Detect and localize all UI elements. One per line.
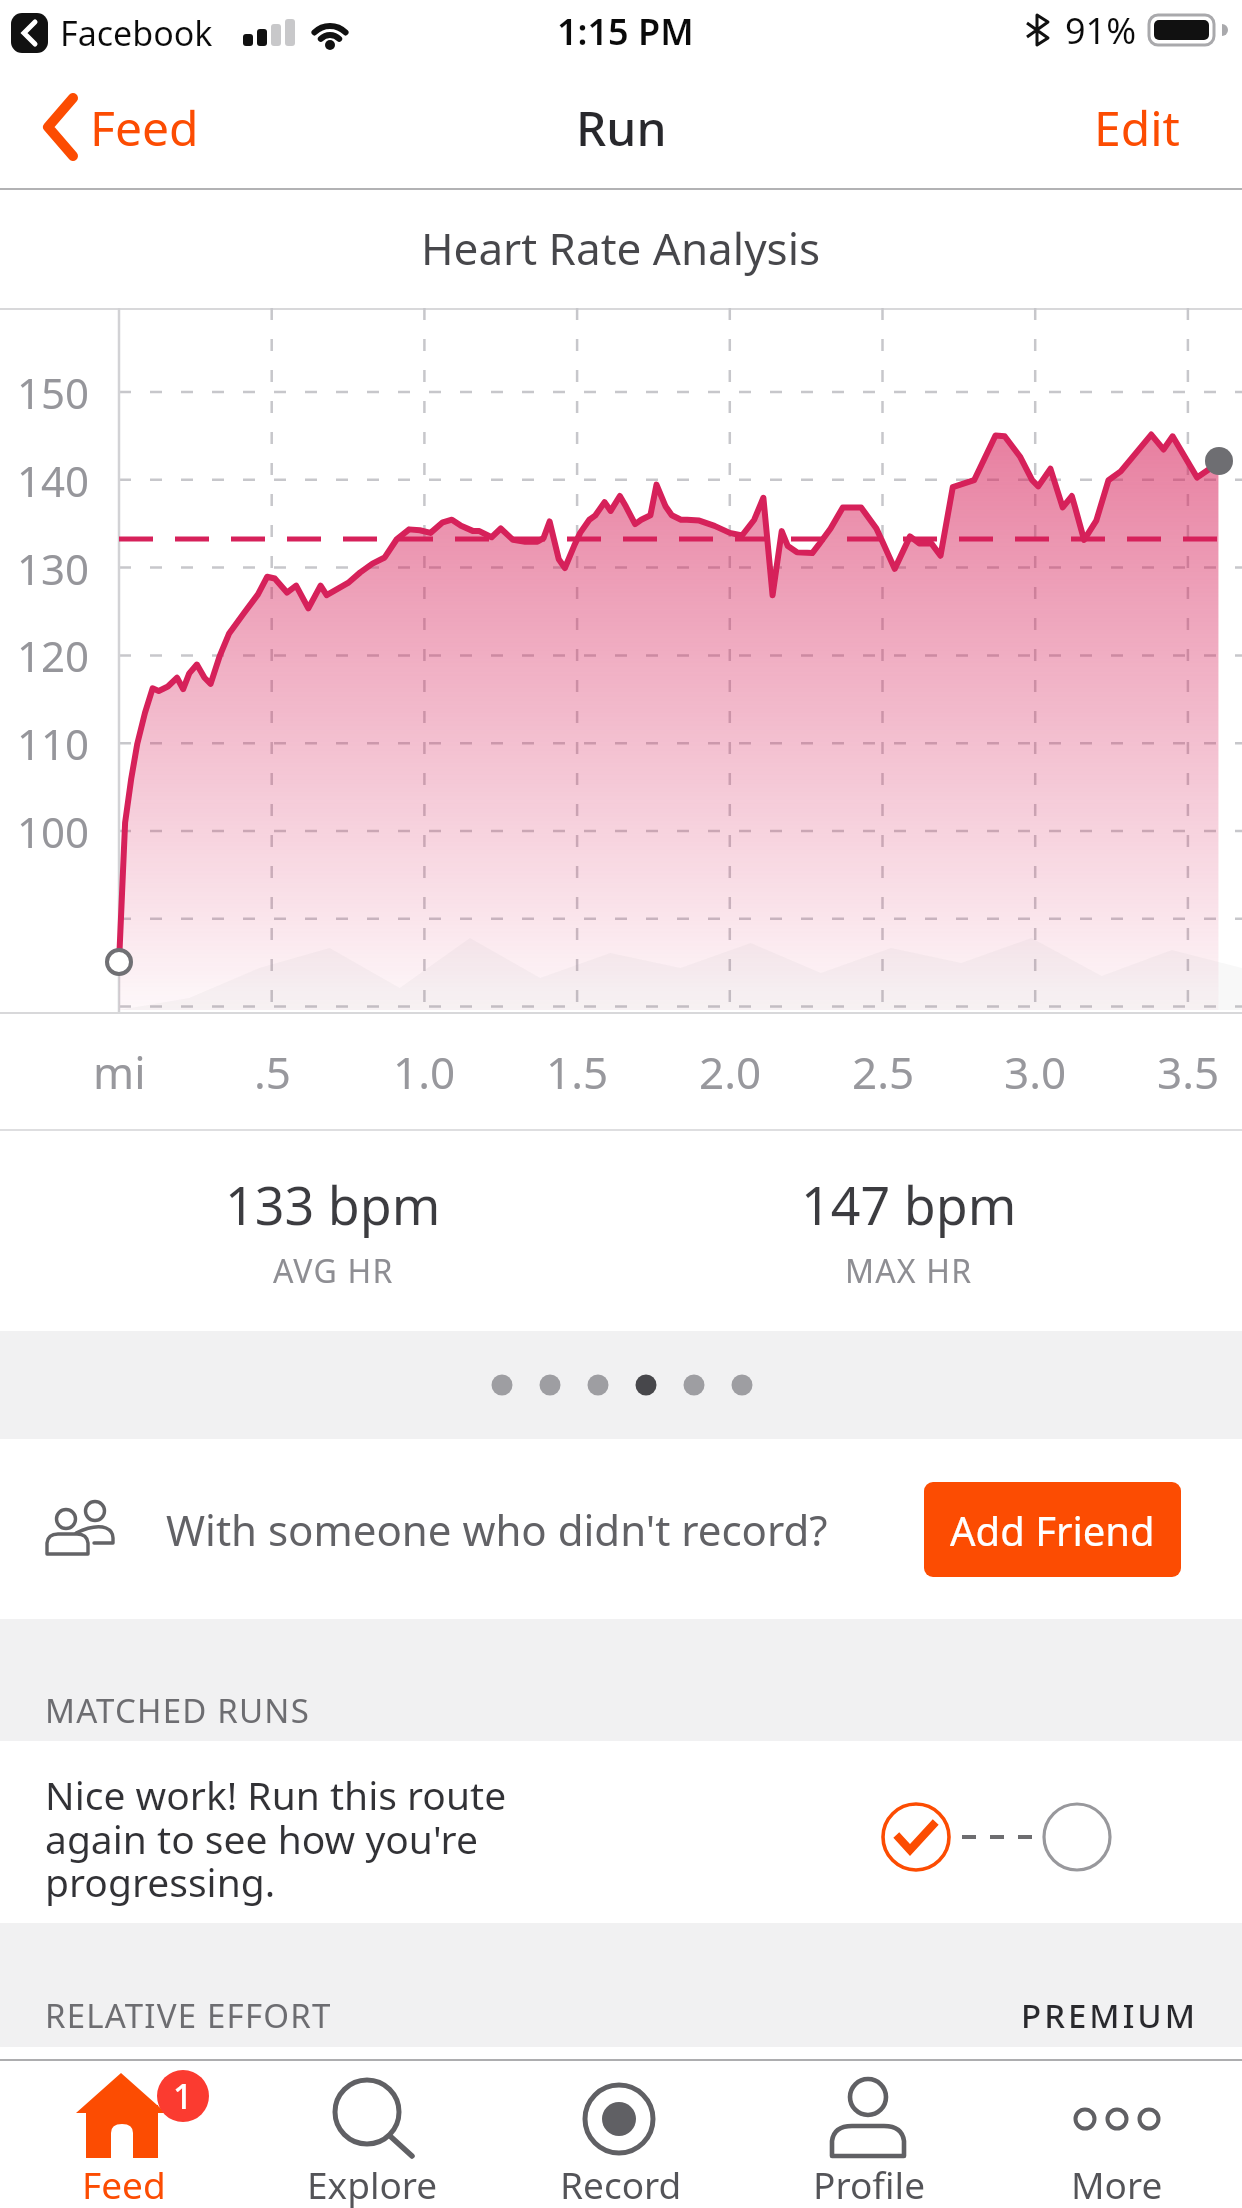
button[interactable] bbox=[1040, 76, 1242, 180]
staticText: progressing. bbox=[45, 1855, 276, 1908]
staticText: Edit bbox=[1094, 95, 1180, 160]
staticText: Feed bbox=[90, 95, 199, 160]
button[interactable] bbox=[994, 2061, 1242, 2208]
button[interactable] bbox=[0, 66, 260, 188]
button[interactable] bbox=[745, 2061, 993, 2208]
staticText: 120 bbox=[17, 627, 90, 684]
button[interactable]: Add Friend bbox=[924, 1482, 1181, 1577]
button[interactable] bbox=[497, 2061, 745, 2208]
staticText: 100 bbox=[17, 803, 90, 860]
staticText: 150 bbox=[17, 364, 90, 421]
staticText: Add Friend bbox=[950, 1503, 1155, 1557]
staticText: .5 bbox=[254, 1042, 291, 1102]
button[interactable] bbox=[248, 2061, 496, 2208]
staticText: More bbox=[1071, 2159, 1163, 2208]
staticText: MATCHED RUNS bbox=[45, 1688, 310, 1733]
staticText: Record bbox=[560, 2159, 682, 2208]
staticText: Explore bbox=[307, 2159, 438, 2208]
button[interactable] bbox=[0, 2061, 248, 2208]
staticText: again to see how you're bbox=[45, 1812, 478, 1865]
staticText: 2.0 bbox=[699, 1042, 762, 1102]
staticText: 140 bbox=[17, 452, 90, 509]
staticText: Feed bbox=[82, 2159, 166, 2208]
staticText: MAX HR bbox=[845, 1249, 973, 1293]
staticText: AVG HR bbox=[273, 1249, 394, 1293]
staticText: 3.5 bbox=[1157, 1042, 1220, 1102]
staticText: 1 bbox=[173, 2073, 193, 2119]
staticText: 1.5 bbox=[546, 1042, 609, 1102]
staticText: Run bbox=[576, 95, 667, 160]
staticText: Profile bbox=[813, 2159, 925, 2208]
staticText: With someone who didn't record? bbox=[166, 1501, 828, 1558]
staticText: Nice work! Run this route bbox=[45, 1768, 507, 1821]
staticText: mi bbox=[93, 1042, 146, 1102]
staticText: 147 bpm bbox=[801, 1169, 1017, 1240]
staticText: PREMIUM bbox=[1021, 1993, 1198, 2038]
staticText: 133 bpm bbox=[225, 1169, 441, 1240]
staticText: 130 bbox=[17, 540, 90, 597]
staticText: 1:15 PM bbox=[557, 7, 694, 56]
staticText: 91% bbox=[1065, 6, 1137, 55]
staticText: Heart Rate Analysis bbox=[421, 218, 821, 278]
staticText: 3.0 bbox=[1004, 1042, 1067, 1102]
staticText: 1.0 bbox=[393, 1042, 456, 1102]
staticText: RELATIVE EFFORT bbox=[45, 1993, 332, 2038]
staticText: 2.5 bbox=[852, 1042, 915, 1102]
staticText: 110 bbox=[17, 715, 90, 772]
staticText: Facebook bbox=[60, 10, 213, 56]
